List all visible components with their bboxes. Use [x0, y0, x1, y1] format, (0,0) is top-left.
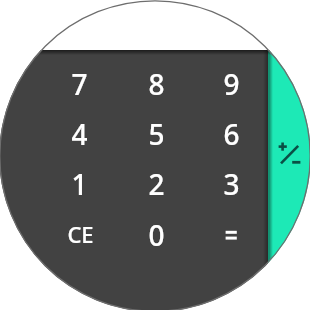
button[interactable]: 5	[119, 109, 193, 159]
button[interactable]: 6	[194, 109, 268, 159]
button[interactable]: Toggle sign plus minus	[268, 50, 310, 310]
staticText: 9	[223, 65, 240, 103]
button[interactable]: CE	[43, 209, 117, 259]
button[interactable]: 2	[119, 159, 193, 209]
button[interactable]: Equals	[194, 210, 268, 260]
button[interactable]: 3	[194, 159, 268, 209]
staticText: 0	[148, 216, 165, 254]
button[interactable]: 1	[42, 159, 116, 209]
staticText: 7	[71, 65, 88, 103]
staticText: 5	[148, 115, 165, 153]
button[interactable]: 7	[42, 59, 116, 109]
button[interactable]: 8	[119, 59, 193, 109]
button[interactable]: 4	[42, 109, 116, 159]
staticText: 1	[71, 165, 88, 203]
staticText: 2	[148, 165, 165, 203]
staticText: 6	[223, 115, 240, 153]
staticText: 8	[148, 65, 165, 103]
staticText: CE	[67, 219, 94, 249]
staticText: 3	[223, 165, 240, 203]
staticText: 4	[71, 115, 88, 153]
button[interactable]: 0	[119, 210, 193, 260]
button[interactable]: 9	[194, 59, 268, 109]
